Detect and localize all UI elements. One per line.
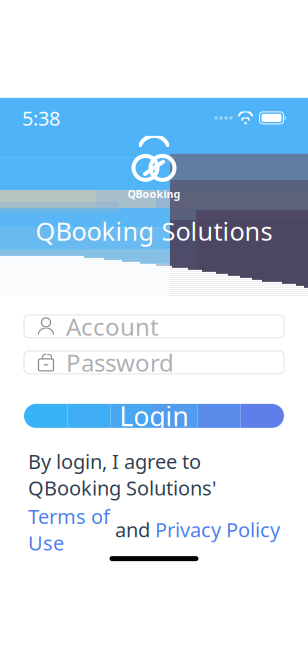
staticText: QBooking	[127, 187, 180, 201]
button[interactable]: Login	[24, 404, 284, 428]
staticText: By login, I agree to QBooking Solutions'	[28, 448, 217, 501]
staticText: Privacy Policy	[155, 516, 280, 543]
staticText: Account	[66, 310, 159, 342]
staticText: 5:38	[22, 105, 60, 131]
staticText: Terms of Use	[28, 503, 110, 556]
staticText: QBooking Solutions	[35, 214, 272, 248]
staticText: and	[110, 516, 155, 543]
button[interactable]: Password	[24, 351, 284, 374]
staticText: Password	[66, 346, 174, 378]
button[interactable]: Terms of Use	[28, 503, 110, 556]
button[interactable]: Account	[24, 315, 284, 338]
staticText: Login	[119, 398, 188, 434]
button[interactable]: Privacy Policy	[155, 516, 280, 543]
